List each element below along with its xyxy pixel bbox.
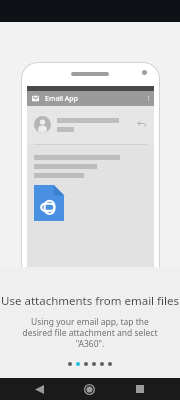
button[interactable]: Page 4 bbox=[92, 362, 96, 366]
button[interactable]: Page 1 bbox=[68, 362, 72, 366]
button[interactable]: Back bbox=[28, 378, 50, 400]
button[interactable]: Home bbox=[78, 378, 100, 400]
button[interactable]: Page 3 bbox=[84, 362, 88, 366]
staticText: Using your email app, tap the desired fi… bbox=[22, 316, 158, 349]
button[interactable]: Email App bbox=[27, 91, 154, 106]
button[interactable]: More options bbox=[143, 96, 154, 101]
staticText: Email App bbox=[45, 94, 78, 104]
button[interactable]: Recent apps bbox=[129, 378, 151, 400]
button[interactable]: Page 6 bbox=[108, 362, 112, 366]
staticText: Use attachments from email files bbox=[1, 293, 179, 309]
button[interactable]: Open attachment bbox=[34, 185, 64, 221]
button[interactable]: Page 5 bbox=[100, 362, 104, 366]
button[interactable]: Page 2 bbox=[76, 362, 80, 366]
